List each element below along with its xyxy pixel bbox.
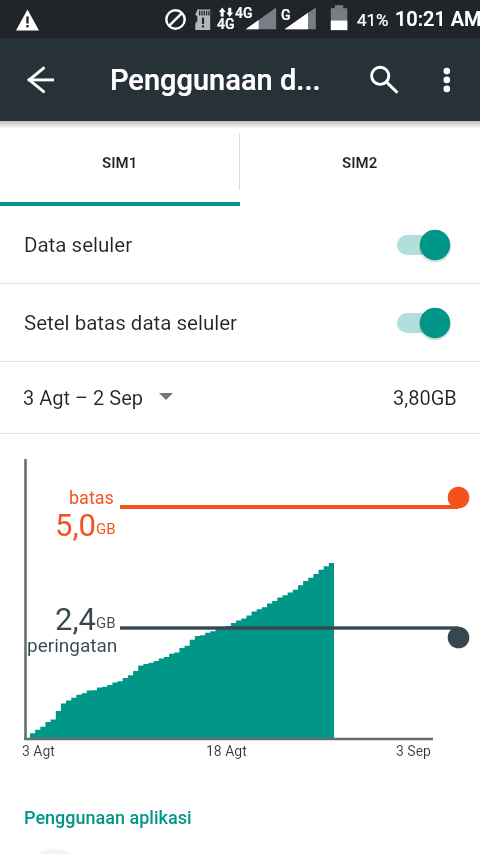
button[interactable]: 3 Agt – 2 Sep	[0, 362, 480, 433]
button[interactable]: Data seluler	[0, 206, 480, 283]
staticText: batas	[69, 487, 114, 508]
staticText: Setel batas data seluler	[24, 311, 238, 335]
staticText: 4G	[235, 5, 253, 21]
button[interactable]: More options	[423, 50, 471, 98]
staticText: peringatan	[27, 634, 118, 656]
button[interactable]: SIM1	[0, 121, 240, 206]
staticText: SIM1	[102, 154, 138, 172]
staticText: Data seluler	[24, 233, 133, 257]
staticText: SIM2	[342, 154, 378, 172]
staticText: 10:21 AM	[395, 7, 480, 30]
staticText: 18 Agt	[206, 743, 247, 759]
staticText: 5,0	[55, 507, 96, 543]
staticText: 3 Agt	[22, 743, 55, 759]
button[interactable]: Penggunaan aplikasi	[24, 807, 192, 828]
staticText: 2,4	[55, 601, 96, 637]
staticText: 4G	[217, 16, 235, 32]
staticText: GB	[96, 520, 116, 538]
staticText: Penggunaan d...	[110, 63, 321, 97]
button[interactable]: Search	[356, 50, 404, 98]
button[interactable]: SIM2	[240, 121, 480, 206]
staticText: GB	[96, 614, 116, 632]
staticText: 3,80GB	[393, 386, 457, 409]
staticText: 41%	[357, 10, 389, 30]
button[interactable]: Setel batas data seluler	[0, 284, 480, 361]
staticText: 3 Agt – 2 Sep	[23, 386, 143, 409]
button[interactable]: Back	[18, 50, 66, 98]
staticText: G	[281, 7, 291, 23]
staticText: 3 Sep	[396, 743, 431, 759]
